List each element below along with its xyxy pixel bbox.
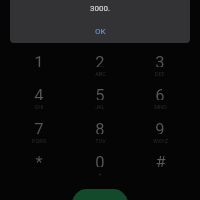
staticText: 7 <box>34 120 44 134</box>
staticText: * <box>35 153 43 167</box>
staticText: 3000. <box>90 4 111 13</box>
button[interactable]: # <box>130 147 190 178</box>
button[interactable]: 6 <box>130 80 190 111</box>
staticText: ABC <box>95 71 106 77</box>
staticText: 3 <box>155 53 165 67</box>
button[interactable]: 1 <box>9 47 69 78</box>
staticText: DEF <box>155 71 165 77</box>
staticText: # <box>155 153 166 167</box>
button[interactable]: 4 <box>9 80 69 111</box>
button[interactable]: 7 <box>9 114 69 145</box>
staticText: WXYZ <box>153 138 168 144</box>
button[interactable]: Call <box>72 189 128 200</box>
staticText: PQRS <box>32 138 46 144</box>
button[interactable]: 3 <box>130 47 190 78</box>
staticText: 5 <box>95 86 105 100</box>
staticText: JKL <box>95 104 105 110</box>
button[interactable]: 8 <box>70 114 130 145</box>
button[interactable]: OK <box>86 27 114 41</box>
button[interactable]: 2 <box>70 47 130 78</box>
staticText: + <box>98 171 102 177</box>
staticText: 9 <box>155 120 165 134</box>
staticText: MNO <box>154 104 167 110</box>
button[interactable]: 9 <box>130 114 190 145</box>
staticText: 6 <box>155 86 165 100</box>
staticText: 1 <box>34 53 44 67</box>
button[interactable]: 0 <box>70 147 130 178</box>
staticText: 8 <box>95 120 105 134</box>
staticText: OK <box>95 27 106 36</box>
staticText: 0 <box>95 153 105 167</box>
staticText: TUV <box>95 138 106 144</box>
button[interactable]: 5 <box>70 80 130 111</box>
staticText: 2 <box>95 53 105 67</box>
staticText: GHI <box>34 104 44 110</box>
button[interactable]: * <box>9 147 69 178</box>
staticText: 4 <box>34 86 44 100</box>
